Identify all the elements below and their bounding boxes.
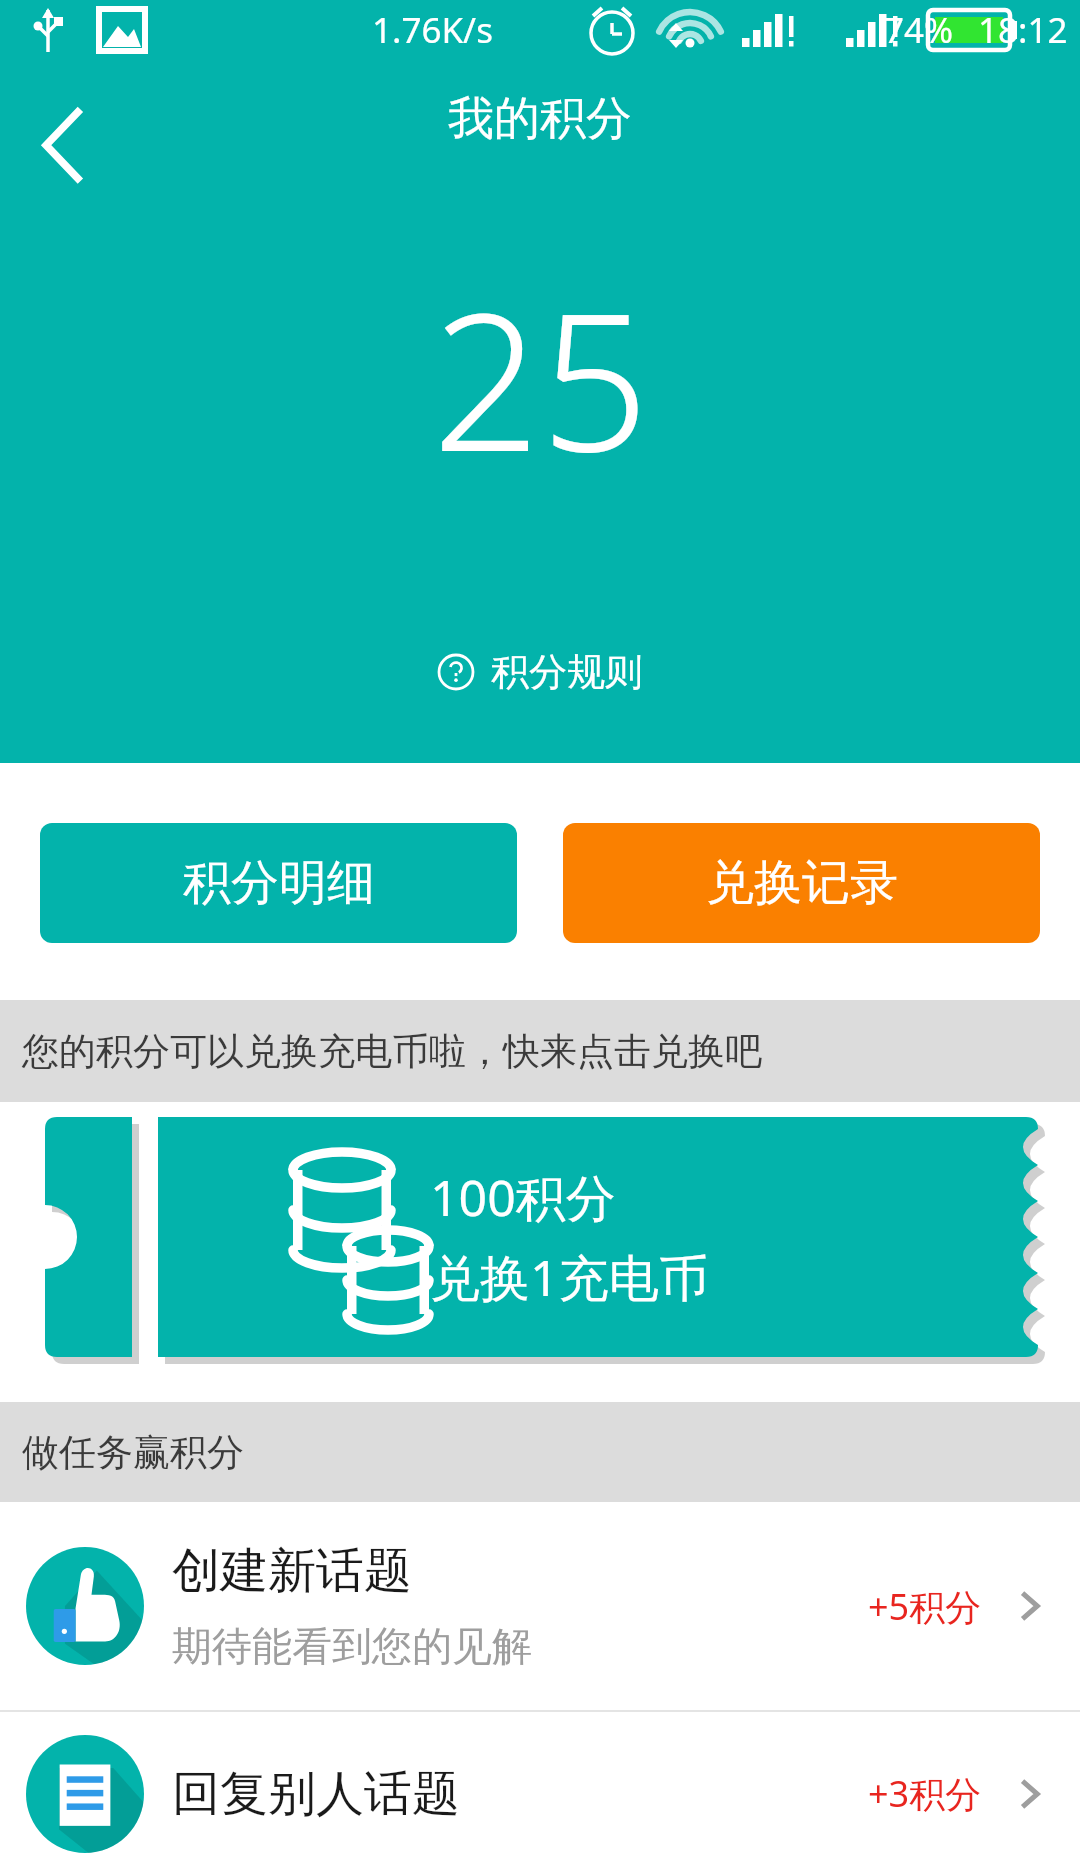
button[interactable]: Back [18, 78, 122, 190]
staticText: 做任务赢积分 [22, 1429, 244, 1476]
button[interactable]: 积分规则 [437, 648, 643, 696]
staticText: 18:12 [978, 6, 1068, 54]
staticText: 1.76K/s [372, 6, 493, 54]
staticText: 积分规则 [491, 648, 643, 696]
staticText: 创建新话题 [172, 1541, 412, 1601]
staticText: 74% [884, 6, 954, 54]
button[interactable]: 积分明细 [40, 823, 517, 943]
staticText: 我的积分 [448, 90, 632, 148]
staticText: 兑换1充电币 [430, 1243, 709, 1311]
staticText: 您的积分可以兑换充电币啦，快来点击兑换吧 [22, 1028, 762, 1075]
staticText: 期待能看到您的见解 [172, 1621, 532, 1671]
staticText: +3积分 [868, 1769, 982, 1818]
button[interactable]: 回复别人话题 [0, 1712, 1080, 1875]
staticText: 25 [432, 248, 649, 507]
button[interactable]: 100积分 [0, 1117, 1080, 1357]
staticText: 积分明细 [183, 853, 375, 913]
staticText: 100积分 [430, 1163, 616, 1231]
button[interactable]: 兑换记录 [563, 823, 1040, 943]
staticText: 回复别人话题 [172, 1764, 460, 1824]
staticText: +5积分 [868, 1582, 982, 1631]
staticText: 兑换记录 [706, 853, 898, 913]
button[interactable]: 创建新话题 [0, 1502, 1080, 1710]
